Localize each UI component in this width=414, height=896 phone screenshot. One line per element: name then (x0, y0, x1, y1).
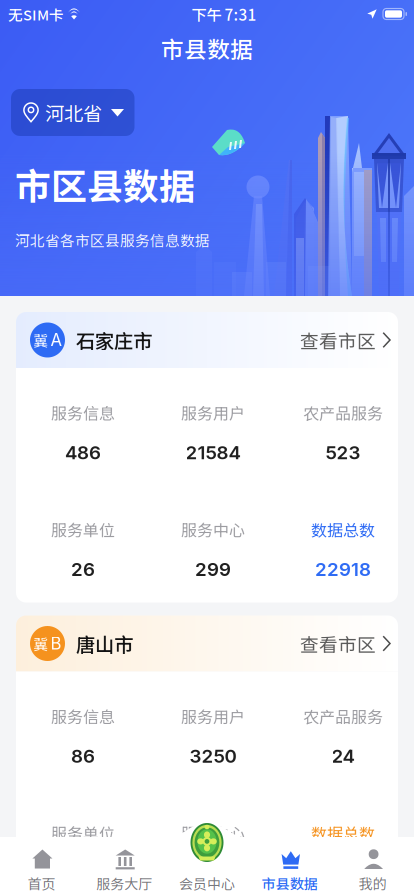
staticText: 河北省 (45, 98, 102, 126)
staticText: 服务用户 (181, 401, 245, 424)
staticText: 河北省各市区县服务信息数据 (15, 229, 210, 250)
button[interactable]: 冀 (16, 615, 398, 671)
staticText: A (50, 330, 61, 350)
staticText: 服务信息 (51, 704, 115, 728)
staticText: 农产品服务 (303, 704, 383, 728)
staticText: 3434 (319, 861, 367, 884)
staticText: 我的 (359, 873, 387, 893)
staticText: 299 (195, 558, 231, 580)
staticText: 21584 (185, 441, 240, 464)
button[interactable]: 市县数据 (248, 848, 331, 893)
staticText: 查看市区 (300, 326, 376, 353)
staticText: 市县数据 (161, 32, 253, 64)
staticText: 冀 (33, 633, 48, 654)
staticText: 市区县数据 (15, 158, 195, 210)
staticText: 24 (331, 745, 354, 767)
staticText: B (50, 633, 61, 654)
button[interactable]: 河北省 (11, 89, 134, 136)
staticText: 服务大厅 (96, 873, 152, 893)
button[interactable]: 服务大厅 (83, 848, 166, 893)
staticText: 服务用户 (181, 704, 245, 728)
staticText: 523 (325, 441, 360, 464)
staticText: 86 (71, 745, 95, 767)
staticText: 26 (71, 558, 95, 580)
staticText: 会员中心 (179, 873, 235, 893)
staticText: 服务中心 (181, 518, 245, 541)
staticText: 服务中心 (181, 821, 245, 844)
button[interactable]: 会员中心 (166, 848, 248, 893)
staticText: 无SIM卡 (8, 3, 64, 25)
staticText: 服务信息 (51, 401, 115, 424)
staticText: 61 (203, 861, 223, 884)
staticText: 3250 (189, 745, 236, 767)
button[interactable]: 冀 (16, 312, 398, 368)
staticText: 农产品服务 (303, 401, 383, 424)
staticText: 冀 (33, 329, 48, 351)
staticText: 486 (65, 441, 101, 464)
staticText: 数据总数 (311, 518, 375, 541)
staticText: 首页 (27, 873, 55, 893)
staticText: 数据总数 (311, 821, 375, 844)
staticText: 石家庄市 (76, 326, 152, 354)
staticText: 查看市区 (300, 630, 376, 657)
staticText: 市县数据 (262, 873, 318, 893)
staticText: 22918 (315, 558, 371, 580)
staticText: 唐山市 (76, 629, 133, 657)
button[interactable]: 首页 (0, 848, 83, 893)
staticText: 服务单位 (51, 821, 115, 844)
button[interactable]: 会员中心 (190, 822, 224, 863)
staticText: 服务单位 (51, 518, 115, 541)
button[interactable]: 我的 (331, 848, 414, 893)
staticText: 下午 7:31 (191, 3, 256, 25)
